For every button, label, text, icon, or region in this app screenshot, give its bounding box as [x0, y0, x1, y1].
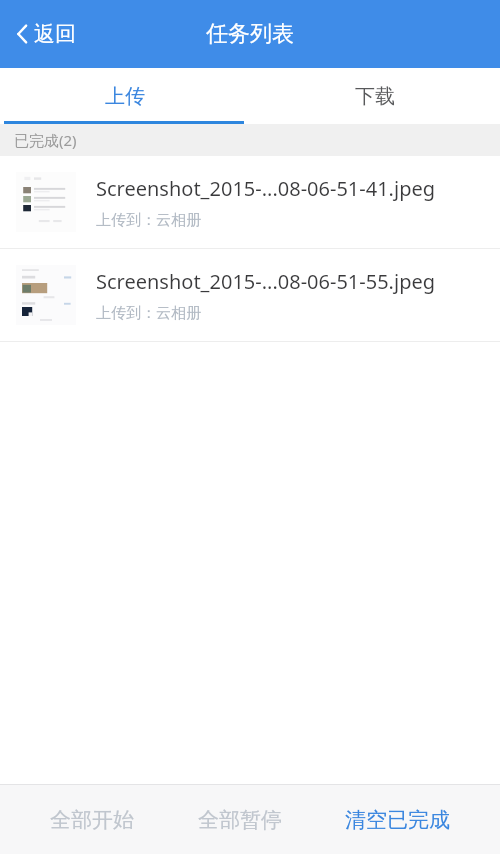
staticText: Screenshot_2015-...08-06-51-55.jpeg	[96, 268, 436, 295]
staticText: 返回	[34, 21, 76, 47]
button[interactable]: 上传	[0, 68, 250, 124]
button[interactable]: Screenshot_2015-...08-06-51-55.jpeg	[0, 249, 500, 341]
button[interactable]: 返回	[0, 0, 94, 68]
staticText: 上传到：云相册	[96, 211, 201, 230]
staticText: 清空已完成	[345, 807, 450, 833]
button[interactable]: Screenshot_2015-...08-06-51-41.jpeg	[0, 156, 500, 248]
staticText: 上传到：云相册	[96, 304, 201, 323]
button[interactable]: 下载	[250, 68, 500, 124]
staticText: 已完成(2)	[14, 130, 77, 150]
staticText: Screenshot_2015-...08-06-51-41.jpeg	[96, 175, 436, 202]
button[interactable]: 全部开始	[36, 785, 148, 854]
staticText: 下载	[355, 84, 395, 109]
button[interactable]: 清空已完成	[331, 785, 464, 854]
staticText: 全部暂停	[198, 807, 282, 833]
staticText: 上传	[105, 84, 145, 109]
staticText: 任务列表	[206, 20, 294, 48]
staticText: 全部开始	[50, 807, 134, 833]
button[interactable]: 全部暂停	[184, 785, 296, 854]
